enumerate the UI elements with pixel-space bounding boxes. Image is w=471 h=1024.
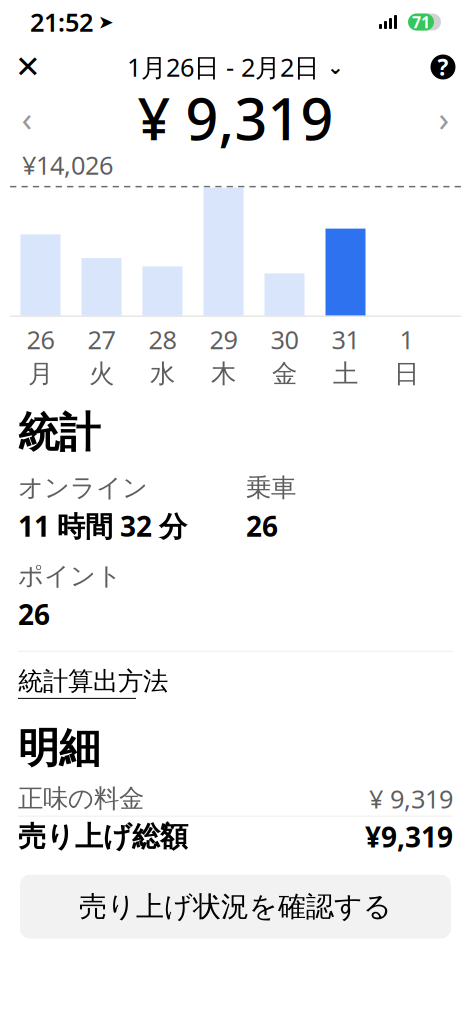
staticText: 21:52	[30, 5, 93, 39]
button[interactable]: 売り上げ状況を確認する	[20, 875, 451, 939]
staticText: 月	[28, 358, 53, 389]
staticText: 土	[333, 358, 358, 389]
staticText: 29	[209, 323, 237, 356]
staticText: 乗車	[246, 472, 296, 503]
staticText: オンライン	[18, 472, 148, 503]
staticText: ポイント	[18, 560, 122, 592]
staticText: 木	[211, 358, 236, 389]
staticText: ¥14,026	[22, 148, 113, 182]
button[interactable]: 閉じる	[0, 44, 56, 90]
staticText: ¥ 9,319	[137, 80, 333, 156]
staticText: 11 時間 32 分	[18, 507, 187, 544]
button[interactable]: 前の週	[0, 90, 54, 146]
staticText: 27	[87, 323, 115, 356]
staticText: 統計算出方法	[18, 666, 168, 697]
staticText: ?	[437, 52, 448, 82]
staticText: 31	[331, 323, 359, 356]
staticText: 金	[272, 358, 297, 389]
staticText: 71	[412, 11, 430, 33]
staticText: 30	[270, 323, 298, 356]
staticText: 売り上げ総額	[18, 819, 188, 854]
staticText: 28	[148, 323, 176, 356]
staticText: ➤	[98, 11, 114, 33]
staticText: 1	[399, 323, 413, 356]
staticText: 日	[394, 358, 419, 389]
staticText: 正味の料金	[18, 783, 144, 814]
staticText: ⌄	[327, 56, 344, 78]
staticText: 26	[18, 596, 50, 633]
button[interactable]: 1月26日 - 2月2日	[119, 44, 352, 90]
staticText: 統計	[18, 407, 100, 458]
staticText: 売り上げ状況を確認する	[79, 889, 392, 924]
staticText: 1月26日 - 2月2日	[127, 50, 319, 84]
staticText: ✕	[15, 50, 41, 84]
button[interactable]: ヘルプ	[415, 44, 471, 90]
button[interactable]: 次の週	[417, 90, 471, 146]
staticText: ¥ 9,319	[369, 782, 453, 815]
staticText: 26	[26, 323, 54, 356]
staticText: ¥9,319	[365, 818, 453, 855]
staticText: ›	[438, 95, 449, 141]
staticText: 水	[150, 358, 175, 389]
staticText: 火	[89, 358, 114, 389]
staticText: 26	[246, 507, 278, 544]
staticText: ‹	[21, 95, 32, 141]
button[interactable]: 統計算出方法	[18, 666, 168, 699]
staticText: 明細	[18, 723, 100, 774]
